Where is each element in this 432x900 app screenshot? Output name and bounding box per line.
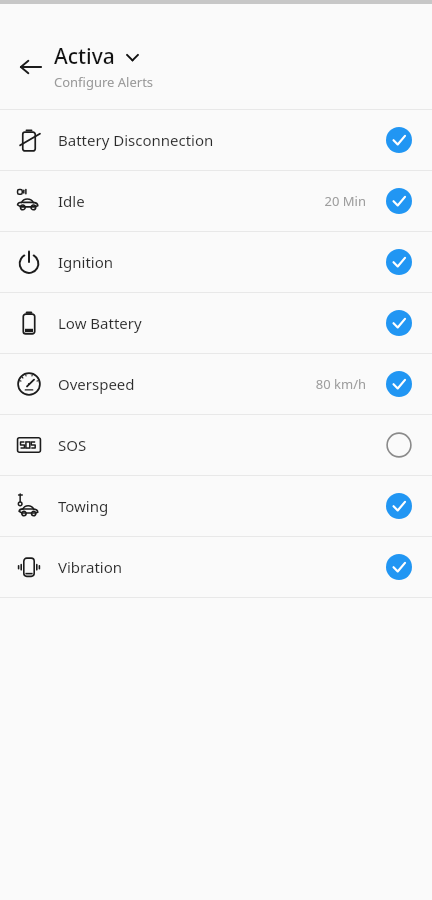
button[interactable]: Overspeed enabled [382,367,416,401]
button[interactable]: Vibration [0,537,432,597]
staticText: 80 km/h [315,375,366,393]
staticText: Low Battery [58,313,142,333]
button[interactable]: Battery Disconnection enabled [382,123,416,157]
staticText: Idle [58,191,85,211]
button[interactable]: Vibration enabled [382,550,416,584]
button[interactable]: Towing [0,476,432,536]
staticText: 20 Min [324,192,366,210]
button[interactable]: Select vehicle [122,47,142,67]
button[interactable]: Ignition [0,232,432,292]
button[interactable]: Ignition enabled [382,245,416,279]
staticText: Overspeed [58,374,135,394]
button[interactable]: Overspeed [0,354,432,414]
staticText: Vibration [58,557,123,577]
button[interactable]: SOS disabled [382,428,416,462]
button[interactable]: Low Battery enabled [382,306,416,340]
button[interactable]: Idle [0,171,432,231]
staticText: Towing [58,496,109,516]
staticText: Activa [54,42,115,71]
button[interactable]: Battery Disconnection [0,110,432,170]
staticText: Ignition [58,252,114,272]
button[interactable]: Towing enabled [382,489,416,523]
staticText: Battery Disconnection [58,130,214,150]
staticText: SOS [58,435,87,455]
button[interactable]: Idle enabled [382,184,416,218]
button[interactable]: SOS [0,415,432,475]
button[interactable]: Low Battery [0,293,432,353]
button[interactable]: Back [14,50,48,84]
staticText: Configure Alerts [54,73,154,91]
